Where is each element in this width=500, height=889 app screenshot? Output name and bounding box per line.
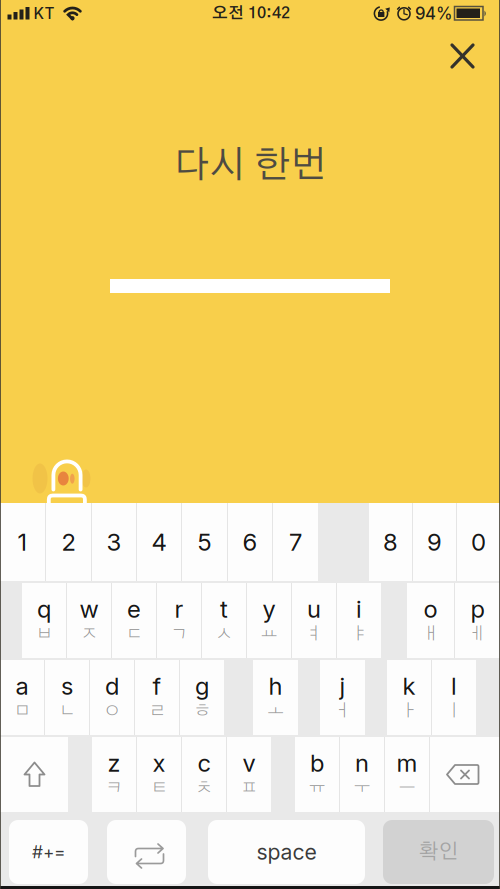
- staticText: 5: [197, 527, 211, 556]
- staticText: z: [107, 748, 120, 777]
- staticText: i: [356, 594, 362, 623]
- button[interactable]: y: [247, 583, 291, 658]
- staticText: h: [268, 671, 282, 700]
- button[interactable]: Switch keyboard: [107, 820, 186, 884]
- staticText: ㄷ: [125, 625, 142, 643]
- staticText: 다시 한번: [173, 147, 326, 185]
- staticText: 4: [151, 527, 166, 556]
- button[interactable]: k: [387, 660, 431, 735]
- button[interactable]: t: [202, 583, 246, 658]
- staticText: ㅈ: [80, 625, 97, 643]
- staticText: 7: [289, 527, 302, 556]
- staticText: r: [174, 594, 183, 623]
- staticText: ㅓ: [334, 702, 351, 720]
- staticText: t: [220, 594, 228, 623]
- staticText: l: [451, 671, 457, 700]
- staticText: 오전 10:42: [212, 5, 290, 21]
- staticText: s: [61, 671, 73, 700]
- staticText: w: [79, 594, 98, 623]
- staticText: 0: [471, 527, 486, 556]
- staticText: f: [152, 671, 161, 700]
- staticText: ㅡ: [398, 779, 415, 797]
- button[interactable]: 4: [137, 503, 181, 581]
- button[interactable]: 3: [92, 503, 136, 581]
- button[interactable]: e: [112, 583, 156, 658]
- button[interactable]: m: [385, 737, 429, 812]
- button[interactable]: 6: [228, 503, 272, 581]
- staticText: ㅌ: [150, 779, 167, 797]
- button[interactable]: p: [455, 583, 500, 658]
- staticText: ㅠ: [308, 779, 325, 797]
- button[interactable]: h: [253, 660, 298, 735]
- button[interactable]: g: [180, 660, 224, 735]
- button[interactable]: d: [90, 660, 134, 735]
- button[interactable]: 9: [413, 503, 456, 581]
- button[interactable]: 8: [369, 503, 412, 581]
- button[interactable]: s: [45, 660, 89, 735]
- staticText: ㅅ: [215, 625, 232, 643]
- button[interactable]: r: [157, 583, 201, 658]
- staticText: ㅁ: [13, 702, 30, 720]
- staticText: c: [197, 748, 210, 777]
- staticText: u: [307, 594, 321, 623]
- button[interactable]: v: [227, 737, 271, 812]
- staticText: 3: [106, 527, 121, 556]
- button[interactable]: 5: [182, 503, 227, 581]
- staticText: ㅜ: [353, 779, 370, 797]
- button[interactable]: a: [0, 660, 44, 735]
- staticText: 6: [242, 527, 257, 556]
- button[interactable]: 확인: [383, 820, 494, 884]
- staticText: ㄱ: [170, 625, 187, 643]
- button[interactable]: Delete: [430, 737, 500, 812]
- button[interactable]: f: [135, 660, 179, 735]
- staticText: ㅔ: [469, 625, 486, 643]
- staticText: ㅊ: [195, 779, 212, 797]
- staticText: 1: [17, 527, 27, 556]
- button[interactable]: j: [320, 660, 365, 735]
- staticText: g: [195, 671, 209, 700]
- button[interactable]: w: [67, 583, 111, 658]
- staticText: KT: [33, 4, 54, 23]
- staticText: ㅗ: [267, 702, 284, 720]
- staticText: ㅑ: [350, 625, 367, 643]
- staticText: y: [262, 594, 275, 623]
- button[interactable]: u: [292, 583, 336, 658]
- button[interactable]: 1: [0, 503, 45, 581]
- staticText: ㅏ: [400, 702, 417, 720]
- button[interactable]: n: [340, 737, 384, 812]
- button[interactable]: Close: [446, 39, 479, 73]
- button[interactable]: i: [337, 583, 381, 658]
- button[interactable]: q: [22, 583, 66, 658]
- button[interactable]: b: [295, 737, 339, 812]
- staticText: j: [339, 671, 345, 700]
- staticText: ㅐ: [422, 625, 439, 643]
- button[interactable]: space: [208, 820, 365, 884]
- staticText: ㅋ: [105, 779, 122, 797]
- button[interactable]: Shift: [0, 737, 68, 812]
- staticText: ㅎ: [193, 702, 210, 720]
- staticText: p: [470, 594, 484, 623]
- staticText: m: [396, 748, 417, 777]
- button[interactable]: o: [407, 583, 454, 658]
- staticText: 9: [427, 527, 442, 556]
- staticText: 확인: [418, 842, 458, 862]
- staticText: b: [310, 748, 324, 777]
- button[interactable]: c: [182, 737, 226, 812]
- staticText: 8: [383, 527, 398, 556]
- staticText: ㅛ: [260, 625, 277, 643]
- button[interactable]: z: [92, 737, 136, 812]
- button[interactable]: 7: [273, 503, 318, 581]
- staticText: q: [37, 594, 51, 623]
- button[interactable]: l: [432, 660, 476, 735]
- button[interactable]: 0: [457, 503, 500, 581]
- staticText: k: [402, 671, 415, 700]
- staticText: d: [105, 671, 119, 700]
- button[interactable]: #+=: [9, 820, 88, 884]
- staticText: x: [152, 748, 165, 777]
- staticText: ㅂ: [35, 625, 52, 643]
- staticText: 2: [61, 527, 75, 556]
- staticText: ㄴ: [58, 702, 75, 720]
- button[interactable]: x: [137, 737, 181, 812]
- button[interactable]: 2: [46, 503, 91, 581]
- staticText: ㄹ: [148, 702, 165, 720]
